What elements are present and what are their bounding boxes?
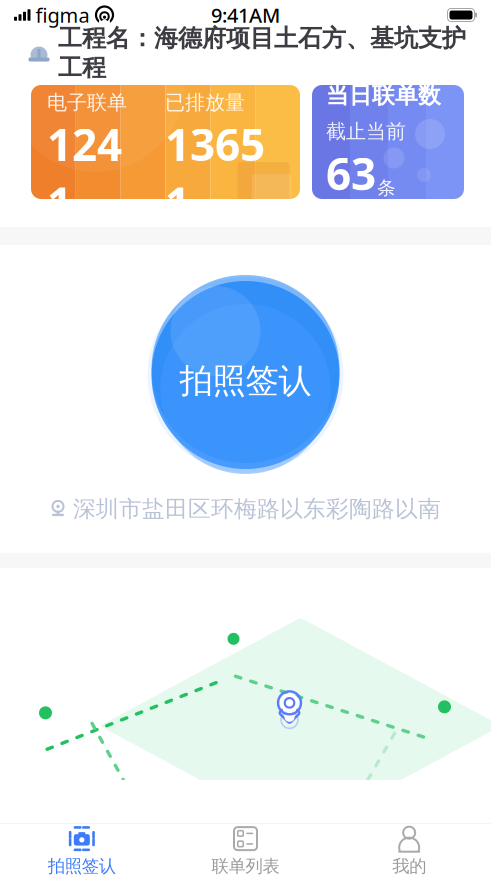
button[interactable]: 联单列表 <box>164 824 327 878</box>
staticText: 63 <box>326 144 376 202</box>
button[interactable]: 排放数据 <box>31 85 300 199</box>
staticText: 拍照签认 <box>48 856 116 877</box>
staticText: 深圳市盐田区环梅路以东彩陶路以南 <box>73 495 441 523</box>
staticText: 9:41AM <box>211 2 280 28</box>
staticText: 我的 <box>392 856 426 877</box>
button[interactable]: 拍照签认 <box>147 277 343 473</box>
button[interactable]: 当日联单数 <box>312 85 464 199</box>
staticText: 13651 <box>165 115 265 232</box>
staticText: 工程名：海德府项目土石方、基坑支护工程 <box>58 23 466 82</box>
staticText: 联单列表 <box>211 856 279 877</box>
staticText: 条 <box>377 176 396 199</box>
staticText: 当日联单数 <box>326 82 441 109</box>
staticText: 排放数据 <box>47 52 139 80</box>
staticText: figma <box>35 2 89 28</box>
staticText: 电子联单 <box>47 90 127 115</box>
staticText: 截止当前 <box>326 119 406 144</box>
staticText: 已排放量 <box>165 90 245 115</box>
staticText: 1241 <box>47 115 122 232</box>
staticText: 拍照签认 <box>179 360 311 401</box>
button[interactable]: 深圳市盐田区环梅路以东彩陶路以南 <box>50 489 441 529</box>
button[interactable]: 拍照签认 <box>0 824 164 878</box>
button[interactable]: 我的 <box>327 824 491 878</box>
